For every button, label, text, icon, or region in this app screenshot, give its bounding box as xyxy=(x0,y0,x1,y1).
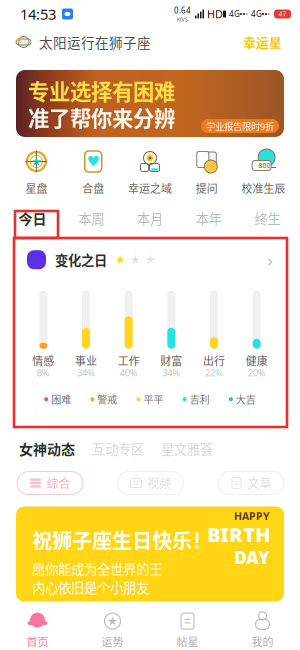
staticText: 34% xyxy=(77,366,95,379)
staticText: 14:53 xyxy=(20,4,56,24)
staticText: 40% xyxy=(120,366,138,379)
staticText: 我的 xyxy=(251,636,273,647)
button[interactable]: ★ xyxy=(75,613,150,647)
staticText: 大吉 xyxy=(236,394,256,404)
button[interactable]: 本周 xyxy=(62,202,121,234)
staticText: 合盘 xyxy=(82,182,104,194)
staticText: 星文雅荟 xyxy=(161,441,213,456)
staticText: 内心依旧是个小朋友 xyxy=(32,580,149,594)
button[interactable]: 我的 xyxy=(225,613,300,647)
staticText: 情感 xyxy=(32,355,54,366)
staticText: HAPPY xyxy=(234,509,270,523)
button[interactable]: 幸运之域 xyxy=(122,150,178,194)
staticText: 太阳运行在狮子座 xyxy=(39,35,151,49)
staticText: 财富 xyxy=(160,355,182,366)
staticText: 警戒 xyxy=(97,394,117,404)
button[interactable]: 视频 xyxy=(117,471,183,494)
button[interactable]: 互动专区 xyxy=(92,441,144,456)
staticText: 幸运之域 xyxy=(128,182,172,194)
button[interactable]: ★ xyxy=(8,150,65,194)
staticText: 4G xyxy=(229,9,240,19)
staticText: ★ xyxy=(107,614,118,628)
staticText: 准了帮你来分辨 xyxy=(28,106,175,129)
button[interactable]: 女神动态 xyxy=(19,441,75,456)
staticText: 首页 xyxy=(26,636,48,647)
staticText: 综合 xyxy=(46,477,70,489)
button[interactable]: 文章 xyxy=(218,471,284,494)
button[interactable]: 终生 xyxy=(238,202,297,234)
staticText: 学业报告限时9折 xyxy=(206,121,274,131)
button[interactable]: 帖星 xyxy=(150,613,225,647)
staticText: ★ xyxy=(130,253,141,266)
staticText: ♥ xyxy=(87,153,100,170)
staticText: 34% xyxy=(162,366,180,379)
staticText: 星盘 xyxy=(25,182,47,194)
staticText: DAY xyxy=(234,546,270,569)
staticText: 专业选择有困难 xyxy=(28,79,175,102)
staticText: KB/S xyxy=(177,16,188,23)
button[interactable]: 本年 xyxy=(179,202,238,234)
staticText: 8% xyxy=(37,366,50,379)
staticText: 800 xyxy=(259,161,271,170)
staticText: 20% xyxy=(248,366,266,379)
staticText: 互动专区 xyxy=(92,441,144,456)
staticText: 4G xyxy=(251,9,262,19)
staticText: 变化之日 xyxy=(55,253,107,267)
staticText: 平平 xyxy=(143,394,163,404)
staticText: 47 xyxy=(278,10,286,18)
staticText: 出行 xyxy=(203,355,225,366)
button[interactable]: 首页 xyxy=(0,613,75,647)
staticText: 事业 xyxy=(75,355,97,366)
staticText: ★ xyxy=(145,253,156,266)
staticText: 提问 xyxy=(196,182,218,194)
button[interactable]: 幸运星 xyxy=(241,32,284,52)
button[interactable]: 本月 xyxy=(121,202,179,234)
staticText: 0.64 xyxy=(174,5,191,16)
staticText: 健康 xyxy=(246,355,268,366)
staticText: HD xyxy=(207,7,223,21)
staticText: 校准生辰 xyxy=(242,182,286,194)
button[interactable]: 提问 xyxy=(178,150,235,194)
staticText: 困难 xyxy=(51,394,71,404)
staticText: 终生 xyxy=(255,211,281,225)
staticText: 22% xyxy=(205,366,223,379)
staticText: ★ xyxy=(31,155,42,168)
staticText: › xyxy=(267,247,273,272)
staticText: 工作 xyxy=(118,355,140,366)
staticText: 祝狮子座生日快乐！ xyxy=(32,529,212,550)
button[interactable]: 800 xyxy=(235,150,292,194)
staticText: BIRTH xyxy=(207,521,270,548)
staticText: 幸运星 xyxy=(243,35,282,49)
staticText: 本周 xyxy=(78,211,104,225)
button[interactable]: 专业选择有困难 xyxy=(0,56,300,137)
button[interactable]: 综合 xyxy=(17,471,83,494)
staticText: 吉利 xyxy=(190,394,210,404)
staticText: 愿你能成为全世界的王 xyxy=(32,561,162,576)
button[interactable]: 今日 xyxy=(3,202,62,234)
button[interactable]: 星文雅荟 xyxy=(161,441,213,456)
staticText: 视频 xyxy=(147,477,171,489)
staticText: ★ xyxy=(115,253,126,266)
staticText: 运势 xyxy=(101,636,123,647)
staticText: 帖星 xyxy=(176,636,198,647)
staticText: 本年 xyxy=(196,211,222,225)
staticText: 本月 xyxy=(137,211,163,225)
staticText: 女神动态 xyxy=(19,441,75,456)
staticText: 今日 xyxy=(18,211,46,226)
staticText: 文章 xyxy=(247,477,271,489)
button[interactable]: ♥ xyxy=(65,150,122,194)
button[interactable]: 祝狮子座生日快乐！ xyxy=(0,494,300,601)
